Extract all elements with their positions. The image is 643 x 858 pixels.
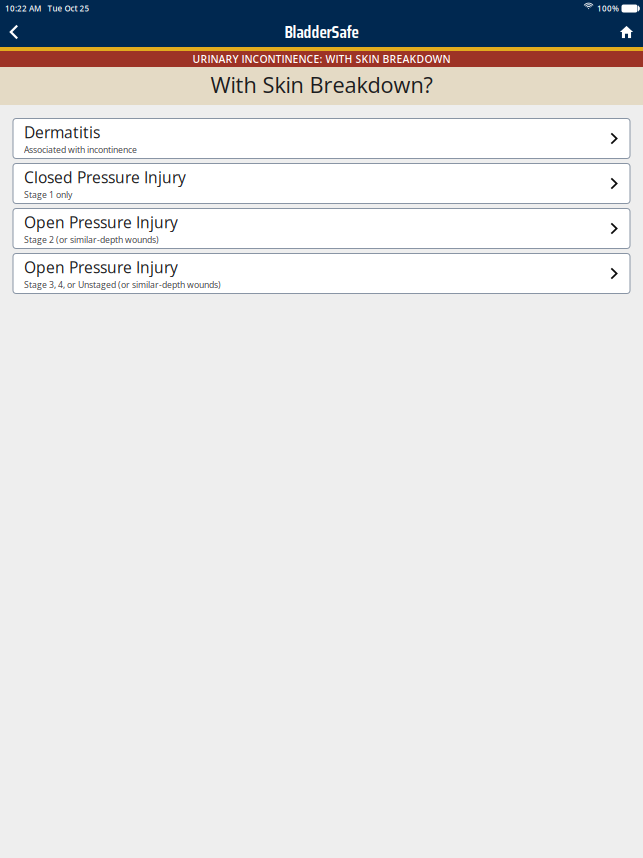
staticText: Stage 3, 4, or Unstaged (or similar-dept… xyxy=(24,279,221,290)
staticText: With Skin Breakdown? xyxy=(210,70,432,99)
staticText: Stage 2 (or similar-depth wounds) xyxy=(24,234,159,245)
staticText: 10:22 AM xyxy=(5,3,41,14)
staticText: Tue Oct 25 xyxy=(47,3,89,14)
staticText: Closed Pressure Injury xyxy=(24,166,186,188)
button[interactable]: Dermatitis xyxy=(13,118,630,158)
staticText: Open Pressure Injury xyxy=(24,256,178,278)
staticText: URINARY INCONTINENCE: WITH SKIN BREAKDOW… xyxy=(192,52,450,66)
button[interactable]: Closed Pressure Injury xyxy=(13,163,630,203)
staticText: Stage 1 only xyxy=(24,189,72,200)
staticText: Open Pressure Injury xyxy=(24,211,178,233)
button[interactable]: Open Pressure Injury xyxy=(13,253,630,293)
button[interactable]: Open Pressure Injury xyxy=(13,208,630,248)
button[interactable]: Home xyxy=(611,17,641,47)
button[interactable]: Back xyxy=(0,17,28,47)
staticText: Dermatitis xyxy=(24,121,100,143)
staticText: 100% xyxy=(597,3,619,14)
staticText: Associated with incontinence xyxy=(24,144,137,155)
staticText: BladderSafe xyxy=(284,18,358,46)
